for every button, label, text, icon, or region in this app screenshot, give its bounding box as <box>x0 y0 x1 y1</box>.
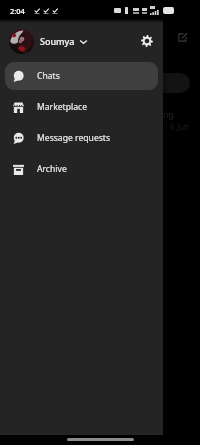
button[interactable]: Settings <box>132 26 162 56</box>
button[interactable]: Archive <box>5 155 158 183</box>
button[interactable]: Message requests <box>5 124 158 152</box>
button[interactable]: Soumya <box>0 22 163 60</box>
staticText: 2:04 <box>10 6 25 16</box>
staticText: ng <box>163 109 174 121</box>
staticText: Marketplace <box>37 101 87 113</box>
staticText: Soumya <box>40 35 75 47</box>
staticText: Message requests <box>37 132 111 144</box>
button[interactable]: Chats <box>5 62 158 90</box>
staticText: Chats <box>37 70 60 82</box>
staticText: · 6 Jun <box>166 121 189 132</box>
button[interactable]: Marketplace <box>5 93 158 121</box>
button[interactable]: New message <box>173 28 192 47</box>
staticText: Archive <box>37 163 67 175</box>
